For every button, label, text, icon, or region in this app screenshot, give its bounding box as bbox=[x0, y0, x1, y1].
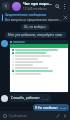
button[interactable]: Спасибо, работает bbox=[9, 94, 51, 102]
button[interactable]: Profile photo bbox=[12, 2, 21, 11]
button[interactable]: Search bbox=[53, 2, 61, 10]
staticText: Все вопросы и предложения пишите в личку… bbox=[5, 18, 63, 22]
button[interactable]: Sender avatar bbox=[1, 40, 8, 47]
button[interactable]: Сообщение bbox=[9, 114, 55, 118]
button[interactable]: Sender avatar bbox=[1, 95, 8, 102]
staticText: Я бы наоборот bbox=[35, 106, 58, 109]
button[interactable]: Emoji bbox=[2, 113, 8, 119]
staticText: Закреплённое сообщение bbox=[5, 13, 47, 17]
button[interactable]: Чат про коронавирус bbox=[23, 1, 53, 11]
button[interactable]: Ok, на выборы bbox=[21, 24, 49, 30]
staticText: Мне уже добавили, попробуйте сами bbox=[8, 33, 63, 37]
staticText: 12 345 members bbox=[23, 7, 47, 11]
staticText: Ok, на выборы bbox=[24, 25, 46, 29]
button[interactable]: Close pinned message bbox=[63, 15, 68, 20]
button[interactable]: Мне уже добавили, попробуйте сами bbox=[5, 32, 66, 38]
button[interactable]: More options bbox=[61, 3, 68, 10]
button[interactable]: Back bbox=[2, 2, 10, 10]
button[interactable]: Attach file bbox=[55, 113, 61, 119]
staticText: 21:04 bbox=[42, 97, 49, 100]
button[interactable] bbox=[9, 40, 69, 93]
staticText: Спасибо, работает bbox=[11, 96, 40, 100]
staticText: Чат про коронавирус bbox=[23, 1, 53, 6]
button[interactable]: Record voice message bbox=[62, 113, 68, 119]
staticText: 21:06 bbox=[60, 106, 67, 109]
button[interactable]: Я бы наоборот bbox=[33, 104, 69, 111]
staticText: Сообщение bbox=[9, 114, 28, 118]
button[interactable]: Закреплённое сообщение bbox=[0, 12, 70, 22]
